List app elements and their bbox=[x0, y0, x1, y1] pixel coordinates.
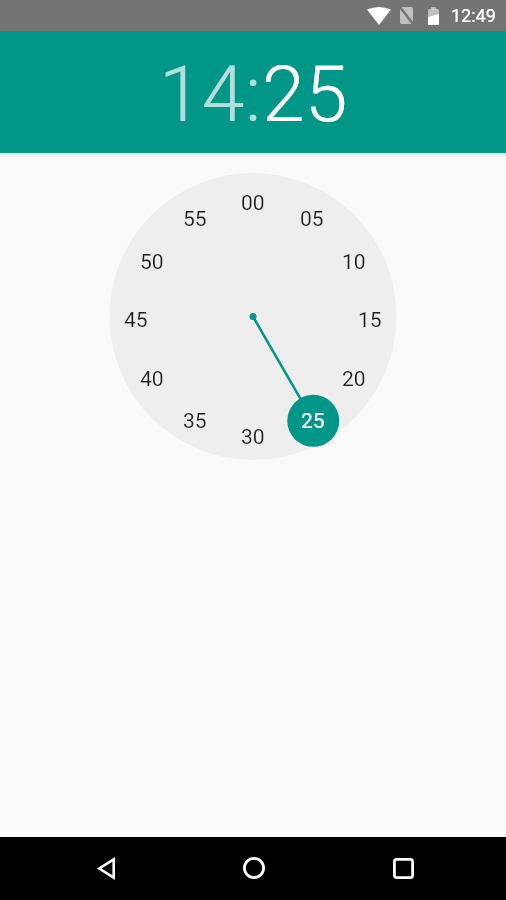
button[interactable] bbox=[234, 848, 274, 888]
button[interactable]: 25 bbox=[262, 50, 348, 140]
staticText: 40 bbox=[140, 367, 164, 392]
staticText: 12:49 bbox=[451, 5, 496, 26]
staticText: 55 bbox=[183, 207, 207, 232]
button[interactable]: 55 bbox=[173, 197, 217, 241]
staticText: 00 bbox=[241, 191, 265, 216]
button[interactable]: 20 bbox=[332, 357, 376, 401]
staticText: 15 bbox=[358, 308, 382, 333]
button[interactable] bbox=[86, 848, 126, 888]
staticText: 14 bbox=[159, 50, 245, 140]
staticText: 45 bbox=[124, 308, 148, 333]
staticText: : bbox=[245, 50, 262, 140]
button[interactable]: 30 bbox=[231, 415, 275, 459]
button[interactable]: 35 bbox=[173, 399, 217, 443]
button[interactable]: 15 bbox=[348, 298, 392, 342]
staticText: 10 bbox=[342, 250, 366, 275]
button[interactable]: 14 bbox=[159, 50, 245, 140]
button[interactable]: 05 bbox=[290, 197, 334, 241]
button[interactable]: 25 bbox=[287, 395, 339, 447]
staticText: 25 bbox=[301, 409, 325, 434]
staticText: 05 bbox=[300, 207, 324, 232]
staticText: 35 bbox=[183, 409, 207, 434]
button[interactable]: 10 bbox=[332, 240, 376, 284]
button[interactable]: 00 bbox=[231, 181, 275, 225]
button[interactable]: 45 bbox=[114, 298, 158, 342]
button[interactable]: 50 bbox=[130, 240, 174, 284]
staticText: 20 bbox=[342, 367, 366, 392]
staticText: 50 bbox=[140, 250, 164, 275]
staticText: 25 bbox=[262, 50, 348, 140]
staticText: 30 bbox=[241, 425, 265, 450]
button[interactable]: 40 bbox=[130, 357, 174, 401]
button[interactable] bbox=[383, 848, 423, 888]
